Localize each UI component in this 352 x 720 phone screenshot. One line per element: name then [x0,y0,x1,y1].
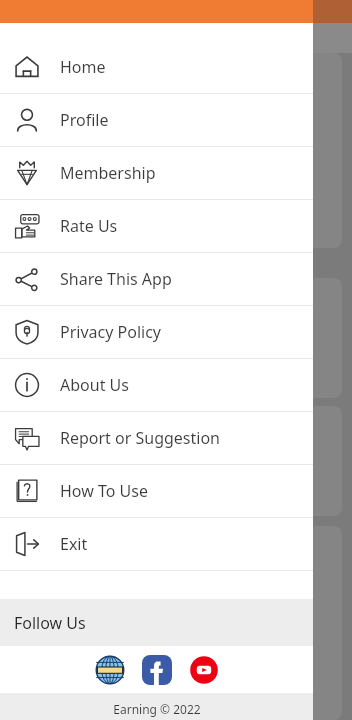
button[interactable]: Share This App [0,253,313,305]
staticText: Profile [60,109,109,131]
button[interactable]: Rate Us [0,200,313,252]
button[interactable]: Report or Suggestion [0,412,313,464]
staticText: Follow Us [14,612,86,634]
button[interactable]: How To Use [0,465,313,517]
button[interactable]: Website [95,655,125,685]
staticText: Home [60,56,106,78]
button[interactable]: Exit [0,518,313,570]
staticText: Privacy Policy [60,321,161,343]
staticText: How To Use [60,480,148,502]
staticText: Report or Suggestion [60,427,221,449]
staticText: Earning © 2022 [113,701,201,717]
button[interactable]: Home [0,41,313,93]
staticText: Share This App [60,268,172,290]
button[interactable]: YouTube [189,655,219,685]
staticText: Exit [60,533,88,555]
staticText: Membership [60,162,156,184]
staticText: About Us [60,374,129,396]
button[interactable]: Privacy Policy [0,306,313,358]
button[interactable]: Membership [0,147,313,199]
button[interactable]: Facebook [142,655,172,685]
button[interactable]: About Us [0,359,313,411]
staticText: Rate Us [60,215,118,237]
button[interactable]: Profile [0,94,313,146]
